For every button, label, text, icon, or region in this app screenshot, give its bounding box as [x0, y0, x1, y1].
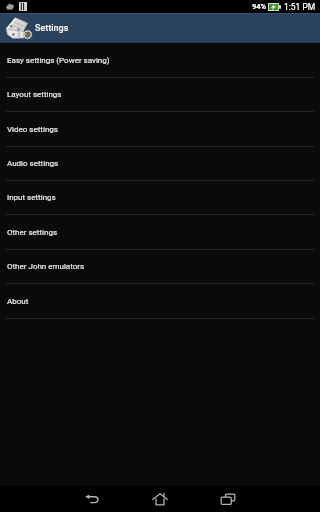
button[interactable]: Other John emulators: [0, 250, 320, 284]
button[interactable]: Home: [126, 486, 194, 512]
staticText: About: [7, 297, 29, 306]
staticText: 94%: [252, 2, 267, 11]
button[interactable]: Input settings: [0, 181, 320, 215]
staticText: Settings: [35, 23, 69, 34]
staticText: Input settings: [7, 193, 56, 202]
button[interactable]: Back: [58, 486, 126, 512]
button[interactable]: About: [0, 284, 320, 319]
staticText: Other John emulators: [7, 262, 85, 271]
button[interactable]: Other settings: [0, 215, 320, 250]
button[interactable]: Recents: [194, 486, 262, 512]
button[interactable]: Easy settings (Power saving): [0, 43, 320, 78]
staticText: Other settings: [7, 228, 58, 237]
staticText: 1:51 PM: [284, 2, 316, 12]
staticText: Layout settings: [7, 90, 62, 99]
button[interactable]: Up: [5, 13, 320, 43]
staticText: Audio settings: [7, 159, 59, 168]
staticText: Easy settings (Power saving): [7, 56, 110, 65]
button[interactable]: Layout settings: [0, 78, 320, 112]
staticText: Video settings: [7, 125, 58, 134]
button[interactable]: Video settings: [0, 112, 320, 147]
button[interactable]: Audio settings: [0, 147, 320, 181]
